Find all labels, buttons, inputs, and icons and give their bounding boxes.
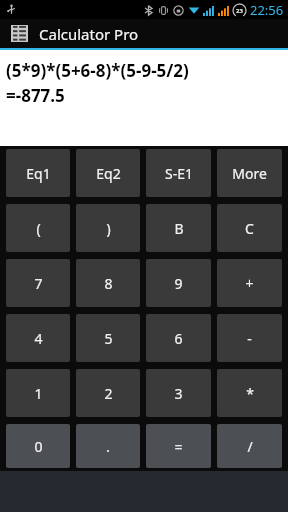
button[interactable]: + xyxy=(217,259,282,307)
button[interactable]: More xyxy=(217,149,282,197)
button[interactable]: 4 xyxy=(6,314,70,362)
staticText: . xyxy=(106,437,110,456)
button[interactable]: ( xyxy=(6,204,70,252)
button[interactable]: - xyxy=(217,314,282,362)
button[interactable]: 6 xyxy=(146,314,211,362)
staticText: ) xyxy=(106,219,111,238)
button[interactable]: = xyxy=(146,424,211,468)
staticText: C xyxy=(245,219,254,238)
staticText: = xyxy=(174,437,183,456)
staticText: 6 xyxy=(174,329,183,348)
button[interactable]: . xyxy=(76,424,140,468)
staticText: 1 xyxy=(34,384,43,403)
button[interactable]: 8 xyxy=(76,259,140,307)
staticText: 8 xyxy=(104,274,113,293)
button[interactable]: / xyxy=(217,424,282,468)
staticText: S-E1 xyxy=(165,164,193,183)
button[interactable]: 0 xyxy=(6,424,70,468)
staticText: - xyxy=(247,329,252,348)
staticText: Eq2 xyxy=(96,164,121,183)
button[interactable]: 5 xyxy=(76,314,140,362)
button[interactable]: S-E1 xyxy=(146,149,211,197)
staticText: More xyxy=(232,164,267,183)
button[interactable]: 1 xyxy=(6,369,70,417)
button[interactable]: Eq2 xyxy=(76,149,140,197)
button[interactable]: 7 xyxy=(6,259,70,307)
staticText: (5*9)*(5+6-8)*(5-9-5/2) xyxy=(6,59,189,82)
staticText: / xyxy=(247,437,253,456)
button[interactable]: * xyxy=(217,369,282,417)
staticText: 3 xyxy=(174,384,183,403)
staticText: 0 xyxy=(34,437,43,456)
staticText: 2 xyxy=(104,384,113,403)
staticText: 7 xyxy=(34,274,43,293)
staticText: 5 xyxy=(104,329,113,348)
staticText: Eq1 xyxy=(26,164,51,183)
staticText: Calculator Pro xyxy=(39,24,139,44)
staticText: =-877.5 xyxy=(6,84,65,107)
button[interactable]: 3 xyxy=(146,369,211,417)
staticText: B xyxy=(174,219,184,238)
staticText: 9 xyxy=(174,274,183,293)
staticText: + xyxy=(245,274,254,293)
button[interactable]: ) xyxy=(76,204,140,252)
staticText: ( xyxy=(36,219,41,238)
staticText: * xyxy=(246,384,254,403)
staticText: 23 xyxy=(236,7,243,15)
button[interactable]: C xyxy=(217,204,282,252)
staticText: 22:56 xyxy=(250,1,284,19)
button[interactable]: B xyxy=(146,204,211,252)
button[interactable]: Eq1 xyxy=(6,149,70,197)
button[interactable]: 2 xyxy=(76,369,140,417)
button[interactable]: 9 xyxy=(146,259,211,307)
staticText: 4 xyxy=(34,329,43,348)
